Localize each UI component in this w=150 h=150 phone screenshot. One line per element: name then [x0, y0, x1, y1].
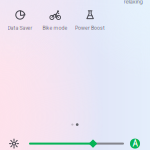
staticText: Bike mode — [42, 25, 67, 31]
staticText: Data Saver — [7, 25, 32, 31]
staticText: A — [132, 139, 137, 148]
staticText: Power Boost — [75, 25, 105, 31]
button[interactable]: Auto brightness — [129, 138, 141, 150]
button[interactable]: Power Boost — [73, 8, 107, 32]
button[interactable]: Bike mode — [38, 8, 72, 32]
staticText: relaxing — [123, 0, 142, 5]
button[interactable]: Data Saver — [3, 8, 37, 32]
